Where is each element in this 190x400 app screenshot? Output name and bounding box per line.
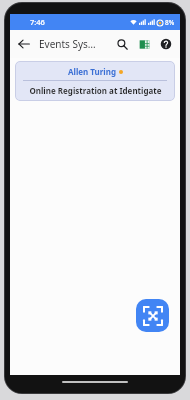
button[interactable]: Allen Turing bbox=[15, 61, 175, 101]
button[interactable]: Help bbox=[155, 33, 177, 55]
button[interactable]: Back bbox=[13, 33, 35, 55]
staticText: 8% bbox=[165, 18, 175, 27]
staticText: Events Sys… bbox=[39, 37, 96, 51]
button[interactable]: Scan QR code bbox=[136, 299, 169, 332]
button[interactable]: Export to spreadsheet bbox=[133, 33, 155, 55]
staticText: Allen Turing bbox=[68, 66, 116, 77]
button[interactable]: Search bbox=[111, 33, 133, 55]
staticText: 7:46 bbox=[30, 17, 45, 27]
staticText: Online Registration at Identigate bbox=[29, 85, 162, 96]
